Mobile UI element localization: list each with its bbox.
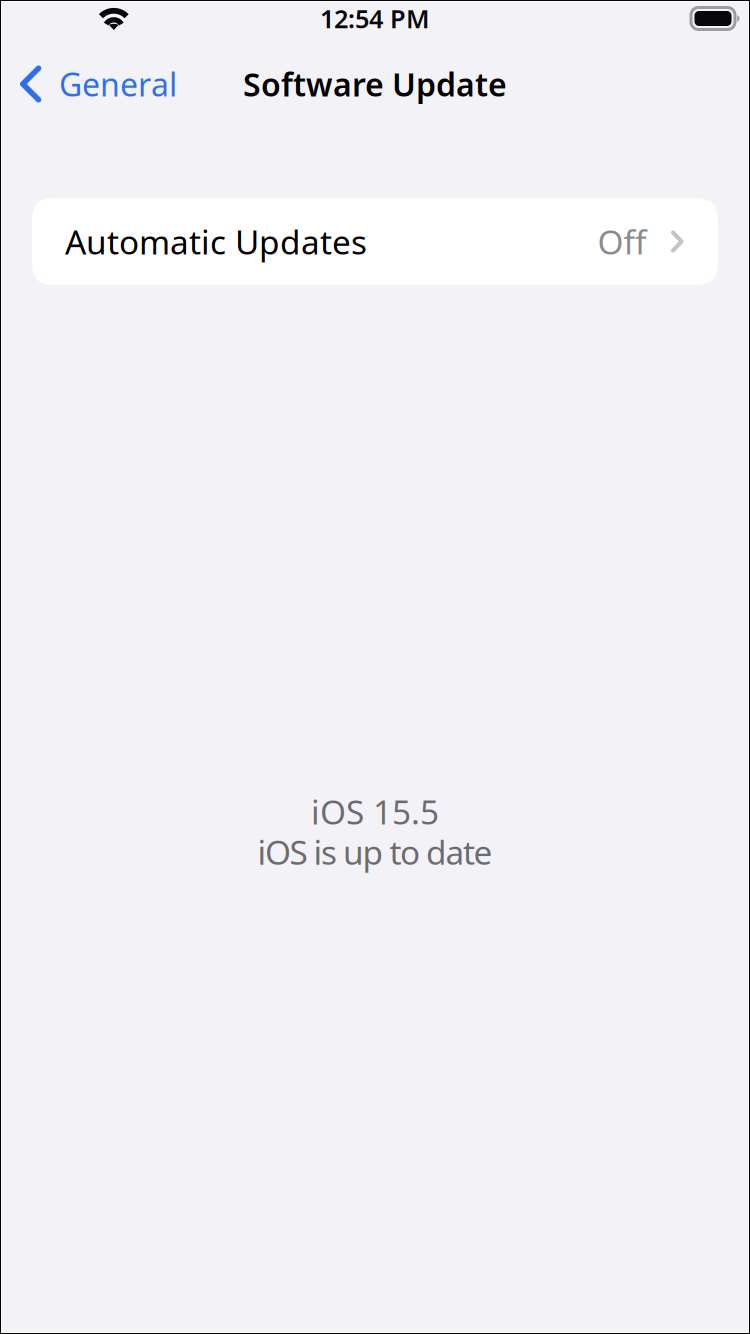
- staticText: Off: [597, 219, 646, 264]
- staticText: Software Update: [243, 63, 507, 105]
- staticText: General: [59, 63, 177, 105]
- staticText: Automatic Updates: [65, 219, 367, 264]
- staticText: iOS 15.5: [311, 789, 439, 834]
- button[interactable]: Back to General: [0, 47, 189, 121]
- staticText: iOS is up to date: [257, 830, 492, 874]
- staticText: 12:54 PM: [320, 2, 430, 35]
- button[interactable]: Automatic Updates: [32, 198, 718, 285]
